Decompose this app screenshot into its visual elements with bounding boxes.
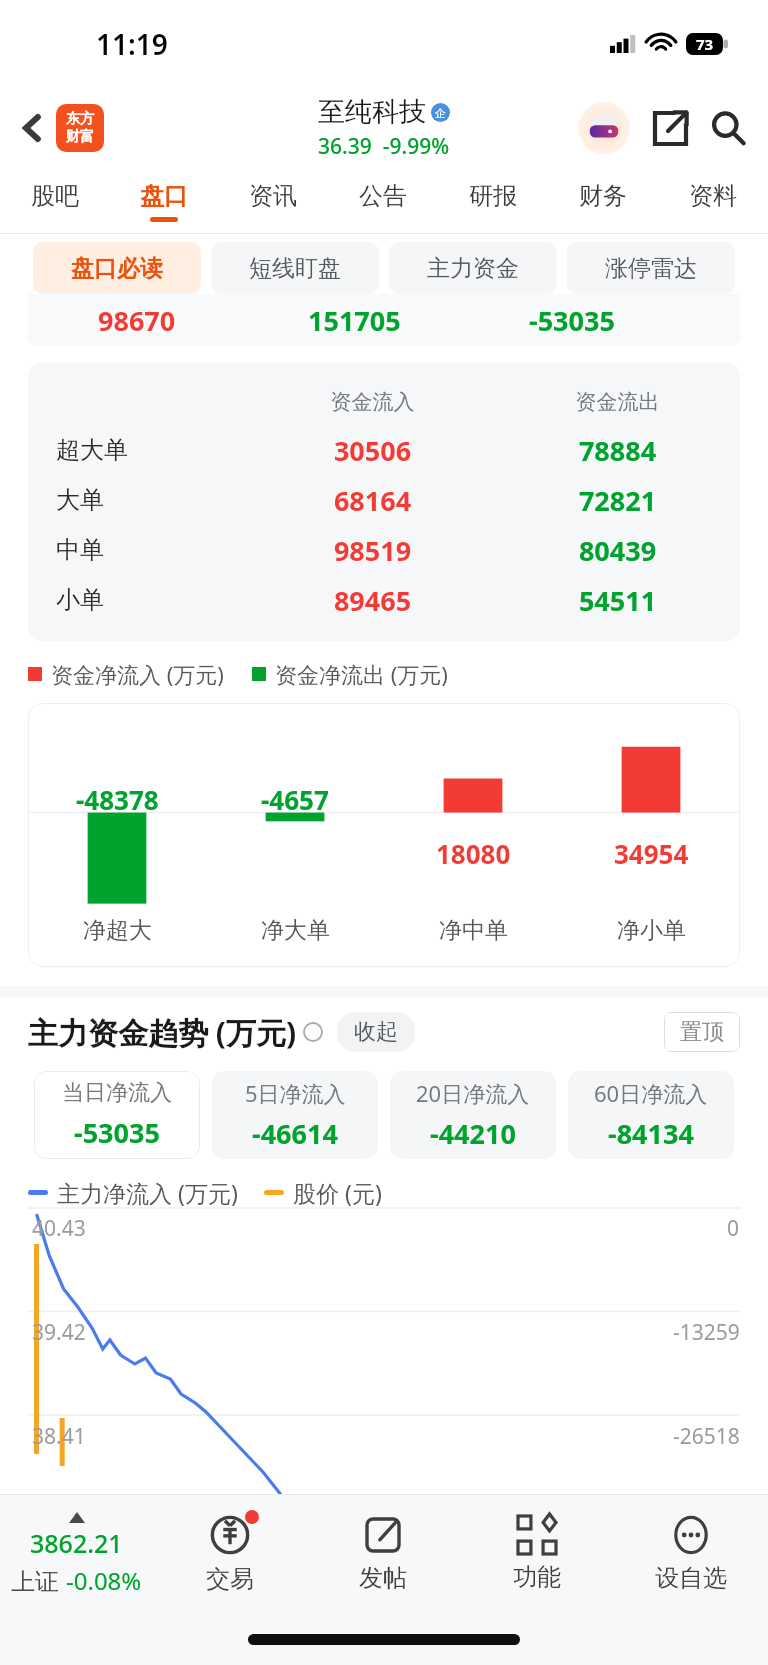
staticText: 68164 <box>250 482 495 519</box>
staticText: 主力资金趋势 (万元) <box>28 1012 297 1053</box>
staticText: 置顶 <box>680 1018 724 1046</box>
button[interactable]: 股吧 <box>0 168 109 234</box>
button[interactable]: 当日净流入 <box>34 1071 200 1159</box>
staticText: 3862.21 <box>30 1526 123 1560</box>
staticText: 36.39 -9.99% <box>318 132 450 161</box>
staticText: 资金净流入 (万元) <box>51 659 224 689</box>
staticText: -44210 <box>430 1115 516 1152</box>
staticText: 资讯 <box>249 181 297 211</box>
staticText: 60日净流入 <box>594 1078 708 1108</box>
staticText: 34954 <box>614 836 689 871</box>
staticText: 78884 <box>495 432 740 469</box>
button[interactable]: 研报 <box>438 168 548 234</box>
staticText: 151705 <box>308 302 401 339</box>
staticText: 资金流出 <box>495 389 740 415</box>
staticText: 发帖 <box>359 1563 407 1593</box>
staticText: 财务 <box>579 181 627 211</box>
staticText: -26518 <box>673 1422 740 1451</box>
staticText: 80439 <box>495 532 740 569</box>
button[interactable]: Search <box>702 102 754 154</box>
staticText: 股吧 <box>31 181 79 211</box>
button[interactable]: 涨停雷达 <box>567 242 735 294</box>
button[interactable]: Share <box>644 102 696 154</box>
button[interactable]: 短线盯盘 <box>211 242 379 294</box>
staticText: 38.41 <box>32 1422 86 1451</box>
staticText: 净大单 <box>261 916 330 945</box>
staticText: -13259 <box>673 1318 740 1347</box>
button[interactable]: 设自选 <box>614 1495 768 1613</box>
button[interactable]: 置顶 <box>664 1012 740 1052</box>
button[interactable]: 3862.21 <box>0 1495 153 1613</box>
staticText: 20日净流入 <box>416 1078 530 1108</box>
staticText: 净超大 <box>83 916 152 945</box>
button[interactable]: 主力资金 <box>389 242 557 294</box>
staticText: -53035 <box>74 1114 160 1151</box>
staticText: 18080 <box>436 836 511 871</box>
staticText: 39.42 <box>32 1318 86 1347</box>
staticText: 上证 <box>11 1564 66 1597</box>
staticText: 资金流入 <box>250 389 495 415</box>
button[interactable]: 5日净流入 <box>212 1071 378 1159</box>
staticText: 研报 <box>469 181 517 211</box>
staticText: 交易 <box>206 1564 254 1594</box>
button[interactable]: Back <box>10 105 56 151</box>
staticText: 73 <box>696 34 714 54</box>
staticText: 东方 <box>66 110 94 128</box>
staticText: 公告 <box>359 181 407 211</box>
staticText: 净中单 <box>439 916 508 945</box>
staticText: -0.08% <box>66 1564 142 1597</box>
button[interactable]: 资料 <box>658 168 768 234</box>
staticText: 超大单 <box>56 435 250 465</box>
staticText: 企 <box>435 106 446 120</box>
button[interactable]: 盘口必读 <box>33 242 201 294</box>
button[interactable]: 60日净流入 <box>568 1071 734 1159</box>
button[interactable]: 公告 <box>328 168 438 234</box>
staticText: 收起 <box>354 1018 398 1046</box>
staticText: 98519 <box>250 532 495 569</box>
staticText: 中单 <box>56 535 250 565</box>
staticText: 设自选 <box>655 1563 727 1593</box>
button[interactable]: 发帖 <box>306 1495 460 1613</box>
staticText: 盘口必读 <box>71 254 163 283</box>
staticText: 54511 <box>495 582 740 619</box>
staticText: 功能 <box>513 1562 561 1592</box>
button[interactable]: 20日净流入 <box>390 1071 556 1159</box>
staticText: 涨停雷达 <box>605 254 697 283</box>
staticText: 当日净流入 <box>62 1079 172 1107</box>
staticText: 5日净流入 <box>245 1078 346 1108</box>
staticText: -53035 <box>529 302 615 339</box>
staticText: 小单 <box>56 585 250 615</box>
staticText: 主力资金 <box>427 254 519 283</box>
button[interactable]: 东方财富 <box>56 104 104 152</box>
staticText: 至纯科技 <box>318 95 426 129</box>
staticText: 净小单 <box>617 916 686 945</box>
staticText: 短线盯盘 <box>249 254 341 283</box>
button[interactable]: AI助手 <box>578 102 630 154</box>
staticText: 40.43 <box>32 1214 86 1243</box>
staticText: 89465 <box>250 582 495 619</box>
button[interactable]: 交易 <box>153 1495 306 1613</box>
staticText: 股价 (元) <box>293 1177 382 1208</box>
staticText: -4657 <box>261 782 329 817</box>
staticText: 11:19 <box>96 25 168 63</box>
staticText: -46614 <box>252 1115 338 1152</box>
button[interactable]: 资讯 <box>218 168 328 234</box>
button[interactable]: 盘口 <box>109 168 218 234</box>
staticText: 大单 <box>56 485 250 515</box>
button[interactable]: 功能 <box>460 1495 614 1613</box>
staticText: -48378 <box>76 782 159 817</box>
staticText: 98670 <box>98 302 176 339</box>
staticText: 主力净流入 (万元) <box>57 1177 238 1208</box>
staticText: 72821 <box>495 482 740 519</box>
staticText: -84134 <box>608 1115 694 1152</box>
staticText: 盘口 <box>140 181 188 211</box>
staticText: 30506 <box>250 432 495 469</box>
button[interactable]: 财务 <box>548 168 658 234</box>
button[interactable]: 收起 <box>337 1012 415 1052</box>
staticText: 资料 <box>689 181 737 211</box>
staticText: 财富 <box>66 128 94 146</box>
staticText: 0 <box>727 1214 740 1243</box>
staticText: 资金净流出 (万元) <box>275 659 448 689</box>
